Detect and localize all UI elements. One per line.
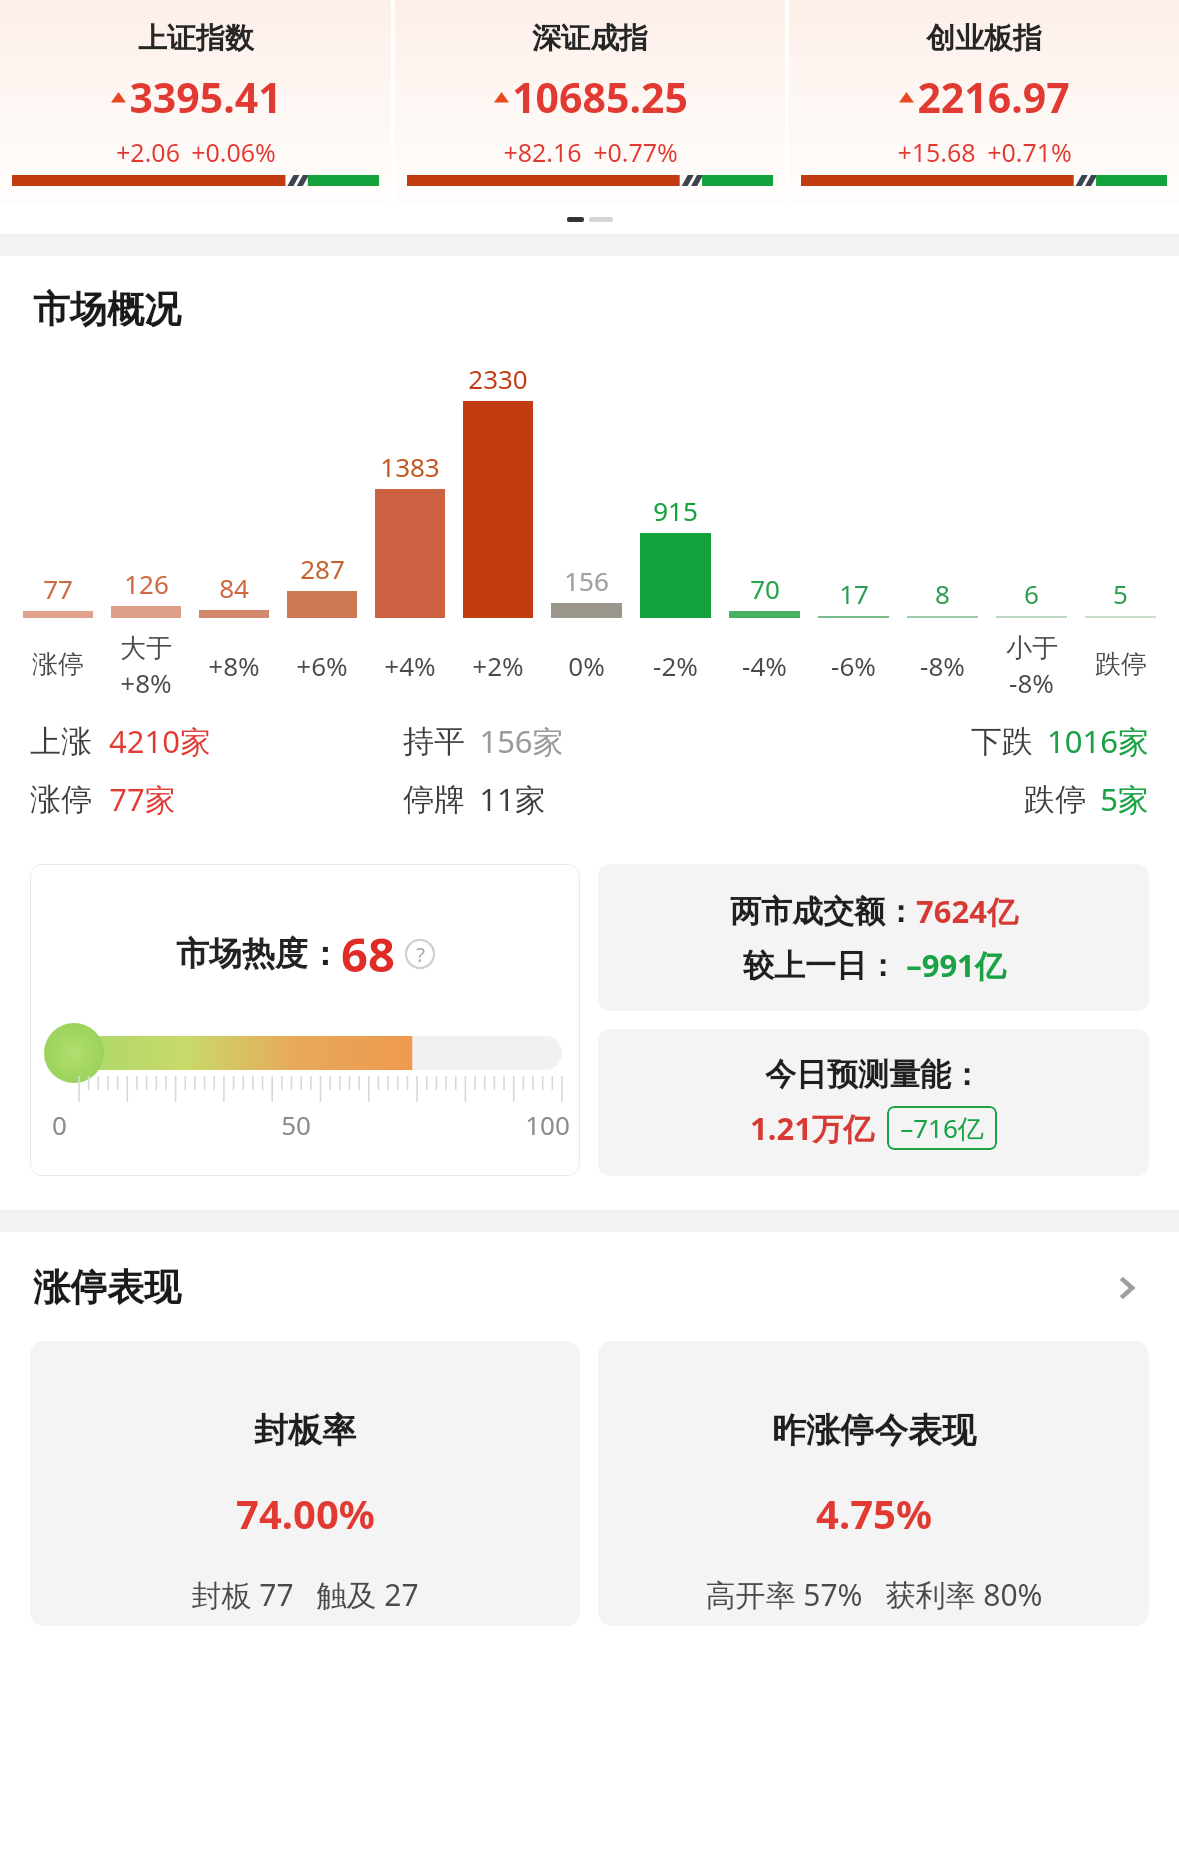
staticText: +8% xyxy=(120,665,172,698)
staticText: 上涨 xyxy=(30,722,92,761)
staticText: 287 xyxy=(300,551,345,586)
staticText: 77家 xyxy=(109,778,176,820)
staticText: 涨停表现 xyxy=(33,1264,181,1311)
staticText: 77 xyxy=(43,571,73,606)
staticText: +8% xyxy=(208,648,260,683)
button[interactable]: 两市成交额： xyxy=(598,864,1149,1011)
staticText: +0.06% xyxy=(191,135,276,169)
staticText: 5 xyxy=(1113,576,1128,611)
staticText: 两市成交额： xyxy=(730,892,916,931)
staticText: 触及 27 xyxy=(316,1574,419,1615)
staticText: 10685.25 xyxy=(512,69,688,125)
staticText: +82.16 xyxy=(503,135,582,169)
staticText: 84 xyxy=(219,570,249,605)
staticText: 涨停 xyxy=(32,648,84,681)
staticText: -4% xyxy=(742,648,787,683)
button[interactable]: 昨涨停今表现 xyxy=(598,1341,1149,1626)
staticText: 3395.41 xyxy=(129,69,282,125)
staticText: 915 xyxy=(653,493,698,528)
staticText: 156 xyxy=(564,563,609,598)
button[interactable]: 今日预测量能： xyxy=(598,1029,1149,1176)
staticText: +2% xyxy=(472,648,524,683)
staticText: 昨涨停今表现 xyxy=(772,1409,976,1452)
button[interactable]: 深证成指 xyxy=(395,0,785,204)
staticText: 涨停 xyxy=(30,780,92,819)
staticText: +2.06 xyxy=(116,135,180,169)
other: 查看更多 xyxy=(1106,1268,1146,1308)
staticText: 68 xyxy=(341,922,395,986)
staticText: 下跌 xyxy=(971,722,1033,761)
staticText: +6% xyxy=(296,648,348,683)
staticText: 1383 xyxy=(380,449,440,484)
staticText: 0% xyxy=(568,648,605,683)
staticText: 跌停 xyxy=(1024,780,1086,819)
staticText: -6% xyxy=(831,648,876,683)
staticText: +0.71% xyxy=(987,135,1072,169)
button[interactable]: 说明 xyxy=(405,939,435,969)
button[interactable]: 涨停表现 xyxy=(33,1264,1146,1311)
staticText: +4% xyxy=(384,648,436,683)
staticText: 17 xyxy=(839,576,869,611)
staticText: ? xyxy=(416,941,425,968)
staticText: 8 xyxy=(935,576,950,611)
staticText: 2330 xyxy=(468,361,528,396)
staticText: +0.77% xyxy=(593,135,678,169)
staticText: –991亿 xyxy=(906,944,1006,986)
staticText: 高开率 57% xyxy=(705,1574,863,1615)
staticText: 1016家 xyxy=(1047,720,1149,762)
staticText: 4210家 xyxy=(109,720,211,762)
staticText: 2216.97 xyxy=(917,69,1070,125)
staticText: 市场概况 xyxy=(33,286,181,333)
staticText: 封板率 xyxy=(254,1409,356,1452)
staticText: 持平 xyxy=(403,722,465,761)
staticText: 市场热度： xyxy=(176,933,341,975)
staticText: 11家 xyxy=(479,778,546,820)
staticText: -8% xyxy=(1009,665,1054,698)
staticText: 4.75% xyxy=(816,1486,932,1540)
staticText: 今日预测量能： xyxy=(765,1055,982,1094)
staticText: 跌停 xyxy=(1095,648,1147,681)
staticText: 上证指数 xyxy=(138,20,254,57)
staticText: -2% xyxy=(653,648,698,683)
staticText: 较上一日： xyxy=(743,946,898,985)
staticText: 126 xyxy=(124,566,169,601)
staticText: 封板 77 xyxy=(191,1574,294,1615)
staticText: -8% xyxy=(920,648,965,683)
staticText: 100 xyxy=(525,1107,570,1142)
button[interactable]: 创业板指 xyxy=(789,0,1179,204)
staticText: 小于 xyxy=(1006,632,1058,665)
button[interactable]: 封板率 xyxy=(30,1341,580,1626)
staticText: 深证成指 xyxy=(532,20,648,57)
staticText: 6 xyxy=(1024,576,1039,611)
staticText: 0 xyxy=(52,1107,67,1142)
staticText: 停牌 xyxy=(403,780,465,819)
button[interactable]: 市场热度： xyxy=(30,864,580,1176)
staticText: 大于 xyxy=(120,632,172,665)
staticText: 156家 xyxy=(479,720,564,762)
button[interactable]: 上证指数 xyxy=(0,0,391,204)
staticText: 获利率 80% xyxy=(885,1574,1043,1615)
staticText: –716亿 xyxy=(900,1110,984,1146)
staticText: 7624亿 xyxy=(916,890,1018,932)
staticText: +15.68 xyxy=(897,135,976,169)
staticText: 创业板指 xyxy=(926,20,1042,57)
staticText: 70 xyxy=(750,571,780,606)
staticText: 1.21万亿 xyxy=(750,1107,874,1149)
staticText: 74.00% xyxy=(236,1486,375,1540)
staticText: 5家 xyxy=(1100,778,1149,820)
staticText: 50 xyxy=(281,1107,311,1142)
